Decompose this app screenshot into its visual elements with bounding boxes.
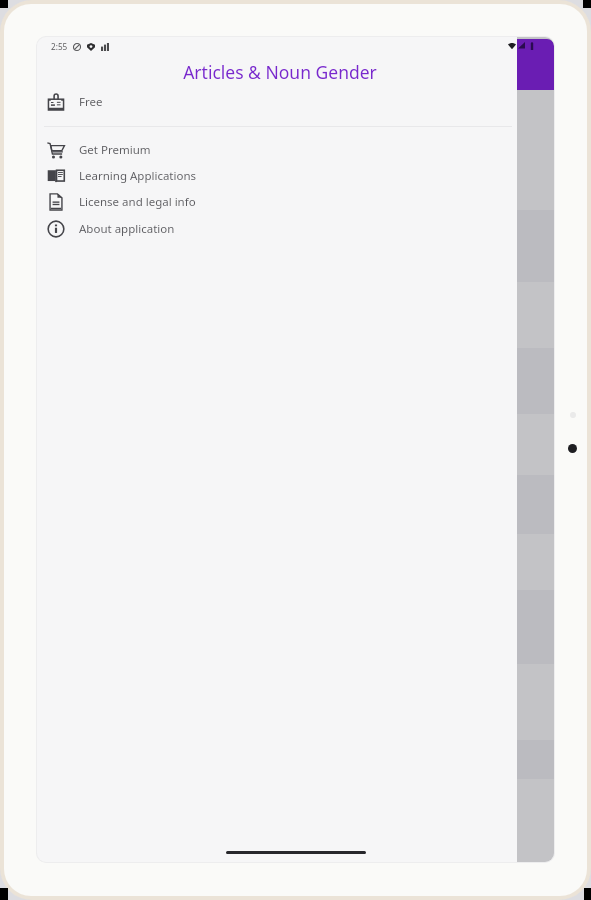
button[interactable]: Free <box>37 89 518 115</box>
button[interactable]: Learning Applications <box>37 163 518 189</box>
button[interactable]: Get Premium <box>37 137 518 163</box>
staticText: Get Premium <box>79 142 151 158</box>
staticText: About application <box>79 221 175 237</box>
staticText: Articles & Noun Gender <box>183 60 377 84</box>
staticText: Free <box>79 94 103 110</box>
staticText: License and legal info <box>79 194 196 210</box>
button[interactable]: About application <box>37 216 518 242</box>
staticText: 2:55 <box>51 41 68 52</box>
other: Scroll position <box>517 39 554 90</box>
button[interactable]: License and legal info <box>37 189 518 215</box>
staticText: Learning Applications <box>79 168 197 184</box>
